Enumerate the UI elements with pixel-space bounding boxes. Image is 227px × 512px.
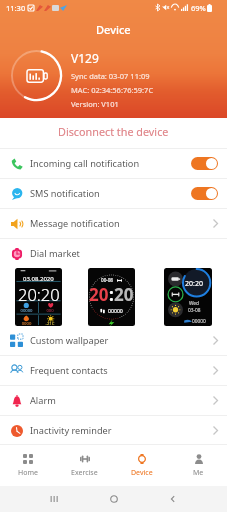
staticText: Custom wallpaper: [30, 334, 109, 347]
staticText: 00000: [108, 307, 123, 314]
button[interactable]: Exercise: [56, 445, 113, 486]
staticText: Dial market: [30, 247, 80, 260]
staticText: Frequent contacts: [30, 364, 108, 377]
staticText: MAC: 02:34:56:76:59:7C: [71, 85, 154, 95]
staticText: -21C: [38, 321, 62, 326]
button[interactable]: Custom wallpaper: [0, 326, 227, 355]
staticText: Me: [193, 468, 204, 478]
staticText: V129: [71, 50, 99, 66]
staticText: 03.08.2020: [23, 275, 54, 283]
staticText: :: [109, 283, 114, 306]
staticText: Device: [131, 468, 153, 478]
staticText: 00000: [192, 318, 206, 325]
button[interactable]: Inactivity reminder: [0, 416, 227, 444]
staticText: 00000: [15, 308, 38, 314]
button[interactable]: Disconnect the device: [0, 118, 227, 148]
staticText: Exercise: [71, 468, 98, 478]
staticText: Device: [96, 22, 131, 37]
button[interactable]: Device: [113, 445, 170, 486]
button[interactable]: 00-08: [88, 268, 135, 326]
staticText: Inactivity reminder: [30, 424, 112, 437]
button[interactable]: SMS notification: [0, 179, 227, 208]
staticText: 20:20: [18, 283, 60, 305]
button[interactable]: Alarm: [0, 386, 227, 415]
staticText: Message notification: [30, 217, 120, 230]
staticText: Alarm: [30, 394, 56, 407]
button[interactable]: Frequent contacts: [0, 356, 227, 385]
button[interactable]: Incoming call notification: [0, 149, 227, 178]
button[interactable]: Toggle Incoming call notification: [191, 157, 218, 170]
staticText: 20: [114, 283, 134, 306]
button[interactable]: 03.08.2020: [15, 268, 62, 326]
staticText: 20: [89, 283, 109, 306]
button[interactable]: Message notification: [0, 209, 227, 238]
staticText: 69%: [191, 3, 206, 13]
staticText: Disconnect the device: [58, 124, 169, 139]
staticText: 20:20: [185, 279, 203, 289]
button[interactable]: Dial market: [0, 239, 227, 268]
staticText: Wed: [189, 300, 200, 307]
staticText: 11:30: [6, 3, 26, 13]
staticText: 000: [38, 308, 62, 314]
staticText: Version: V101: [71, 99, 119, 109]
button[interactable]: 20:20: [164, 268, 212, 326]
staticText: SMS notification: [30, 187, 100, 200]
staticText: 0000: [15, 321, 38, 326]
button[interactable]: Home: [0, 445, 56, 486]
button[interactable]: Me: [170, 445, 227, 486]
button[interactable]: Toggle SMS notification: [191, 187, 218, 200]
staticText: Home: [18, 468, 38, 478]
staticText: Sync data: 03-07 11:09: [71, 71, 150, 81]
staticText: Incoming call notification: [30, 157, 140, 170]
staticText: 00-08: [101, 277, 113, 283]
staticText: 03-08: [188, 307, 201, 314]
